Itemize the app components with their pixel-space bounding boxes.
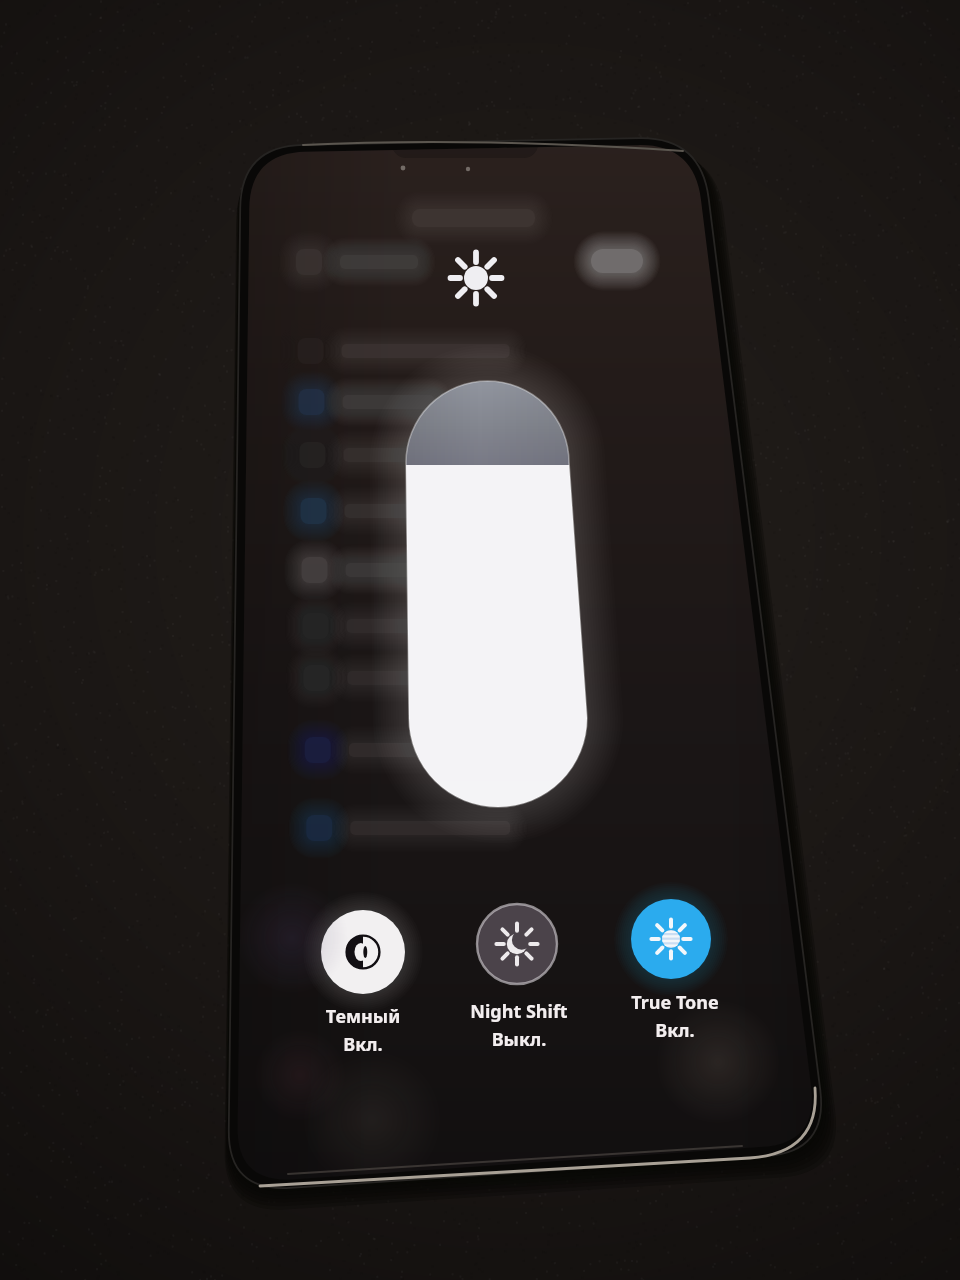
- staticText: True Tone: [580, 990, 770, 1114]
- button[interactable]: Night Shift Выкл.: [424, 933, 614, 1057]
- button[interactable]: Brightness slider: [406, 381, 587, 807]
- button[interactable]: Темный Вкл.: [268, 938, 458, 1062]
- staticText: Вкл.: [268, 1032, 458, 1156]
- staticText: Night Shift: [424, 999, 614, 1123]
- staticText: Темный: [268, 1004, 458, 1128]
- staticText: Вкл.: [580, 1018, 770, 1142]
- button[interactable]: True Tone Вкл.: [580, 924, 770, 1048]
- staticText: Выкл.: [424, 1027, 614, 1151]
